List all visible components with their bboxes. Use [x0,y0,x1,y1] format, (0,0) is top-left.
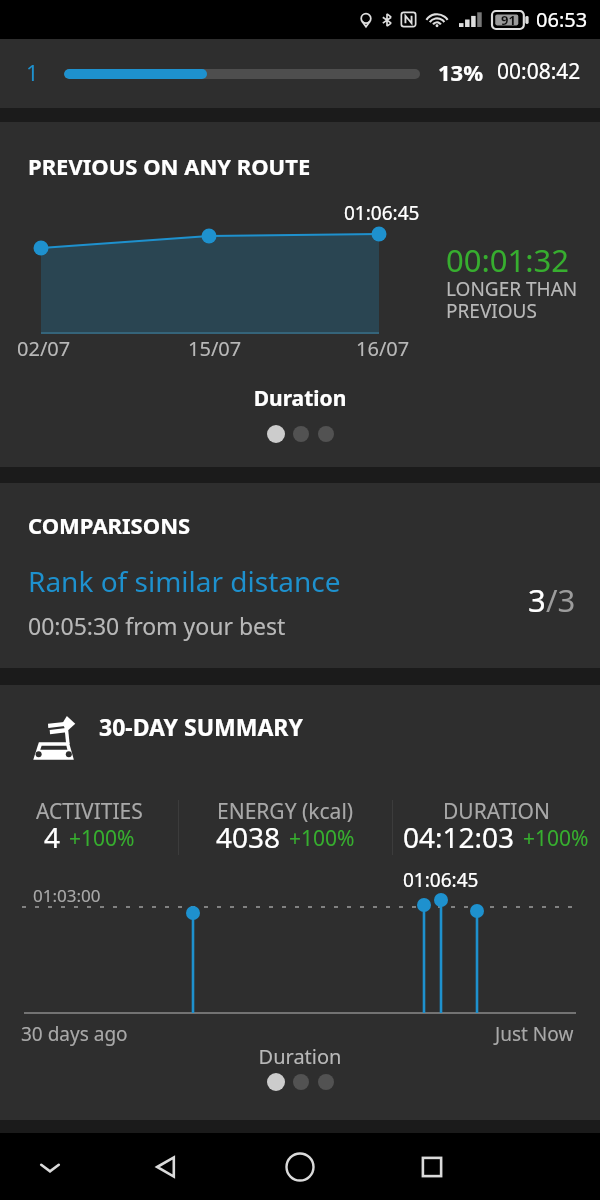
staticText: 00:01:32 [446,239,570,281]
staticText: 00:05:30 from your best [28,610,286,641]
staticText: +100% [289,824,355,853]
staticText: 3 [528,579,546,621]
button[interactable]: Page 2 [293,426,309,442]
button[interactable]: Page 2 [293,1074,309,1090]
staticText: 00:08:42 [497,57,581,86]
button[interactable]: Hide keyboard [10,1133,90,1200]
staticText: +100% [69,824,135,853]
staticText: Duration [0,384,600,413]
staticText: 01:03:00 [33,884,101,907]
button[interactable]: Home [260,1133,340,1200]
staticText: 15/07 [188,335,242,362]
button[interactable]: Page 1 [267,1073,285,1091]
staticText: DURATION [443,797,550,826]
staticText: 1 [26,57,39,87]
staticText: 01:06:45 [344,200,420,226]
button[interactable]: Page 1 [267,425,285,443]
staticText: 4 [44,818,61,856]
button[interactable]: Recents [392,1133,472,1200]
staticText: 02/07 [17,335,71,362]
staticText: 06:53 [536,6,588,33]
staticText: /3 [546,579,576,621]
staticText: Just Now [495,1021,574,1047]
button[interactable]: Page 3 [318,426,334,442]
button[interactable]: Rank of similar distance [0,562,600,652]
staticText: Rank of similar distance [28,562,341,600]
staticText: ENERGY (kcal) [217,797,354,826]
staticText: 13% [438,57,484,87]
button[interactable]: Page 3 [318,1074,334,1090]
staticText: 30 days ago [21,1021,128,1047]
staticText: LONGER THAN PREVIOUS [446,276,578,324]
staticText: 16/07 [356,335,410,362]
staticText: PREVIOUS ON ANY ROUTE [28,151,311,181]
staticText: ACTIVITIES [36,797,143,826]
staticText: Duration [0,1043,600,1070]
staticText: 01:06:45 [403,867,479,893]
staticText: +100% [523,824,589,853]
staticText: 91 [501,11,516,29]
staticText: 4038 [216,818,281,856]
staticText: 30-DAY SUMMARY [99,711,303,742]
button[interactable]: Back [126,1133,206,1200]
staticText: 04:12:03 [403,818,515,856]
staticText: COMPARISONS [28,510,191,540]
